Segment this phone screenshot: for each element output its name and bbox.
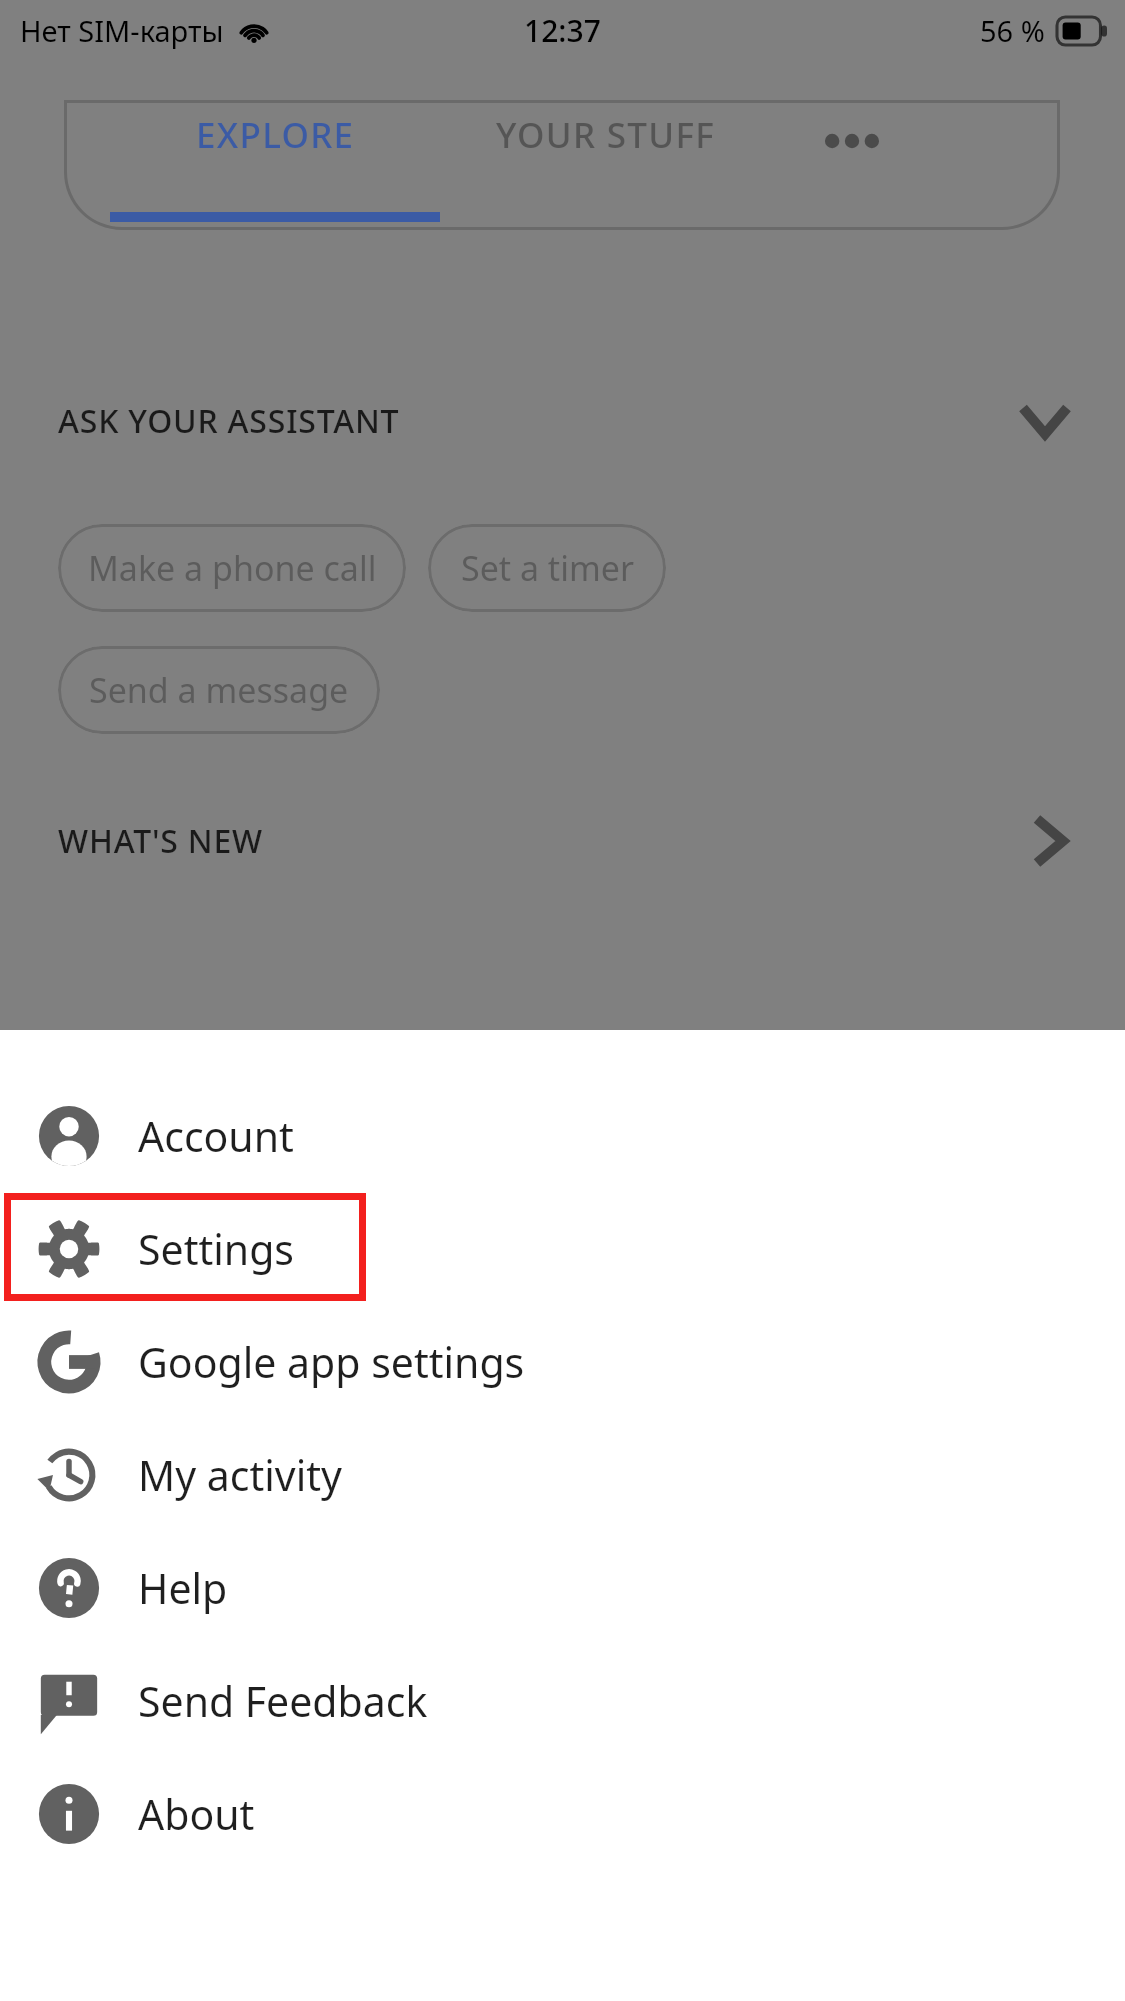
- button[interactable]: My activity: [0, 1420, 1125, 1530]
- button[interactable]: Google app settings: [0, 1307, 1125, 1417]
- button[interactable]: Help: [0, 1533, 1125, 1643]
- staticText: Account: [138, 1108, 294, 1164]
- staticText: 12:37: [524, 10, 601, 51]
- staticText: Send Feedback: [138, 1673, 428, 1729]
- button[interactable]: Send Feedback: [0, 1646, 1125, 1756]
- staticText: Set a timer: [461, 545, 634, 591]
- button[interactable]: EXPLORE: [110, 60, 440, 222]
- staticText: WHAT'S NEW: [58, 819, 264, 863]
- button[interactable]: Make a phone call: [58, 524, 406, 612]
- button[interactable]: WHAT'S NEW: [0, 792, 1125, 890]
- staticText: Help: [138, 1560, 228, 1616]
- staticText: ASK YOUR ASSISTANT: [58, 399, 400, 443]
- staticText: Google app settings: [138, 1334, 525, 1390]
- button[interactable]: Send a message: [58, 646, 380, 734]
- button[interactable]: About: [0, 1759, 1125, 1869]
- button[interactable]: ASK YOUR ASSISTANT: [0, 372, 1125, 470]
- staticText: 56 %: [980, 11, 1045, 50]
- staticText: EXPLORE: [196, 111, 355, 159]
- staticText: Settings: [138, 1221, 295, 1277]
- staticText: My activity: [138, 1447, 342, 1503]
- staticText: Send a message: [89, 667, 349, 713]
- staticText: About: [138, 1786, 255, 1842]
- staticText: Нет SIM-карты: [20, 11, 224, 50]
- button[interactable]: Settings: [0, 1194, 1125, 1304]
- button[interactable]: Set a timer: [428, 524, 666, 612]
- button[interactable]: More options: [762, 60, 942, 222]
- button[interactable]: Account: [0, 1081, 1125, 1191]
- button[interactable]: YOUR STUFF: [440, 60, 770, 222]
- staticText: Make a phone call: [88, 545, 377, 591]
- staticText: YOUR STUFF: [496, 111, 715, 159]
